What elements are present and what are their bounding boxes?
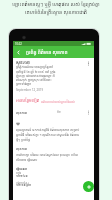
staticText: ១២ម ៤ឆ — [16, 174, 28, 178]
staticText: អានបន្ថែមទៀត — [16, 98, 40, 104]
staticText: សុខភាព — [16, 110, 28, 115]
staticText: សុខភាព — [16, 146, 28, 151]
staticText: សុខភាព — [16, 60, 30, 66]
button[interactable]: More options — [84, 59, 92, 67]
staticText: ឡោះពត៌មានល្អៗ ឬអ្វី ហេតុផល របស់ ខ្មែរគ្រ… — [8, 1, 104, 15]
staticText: ១២:១៨ ព្រឹក — [16, 183, 32, 187]
button[interactable]: Add comment — [83, 181, 94, 192]
button[interactable]: Back — [13, 47, 23, 57]
button[interactable]: អានបន្ថែមទៀត — [16, 98, 75, 104]
staticText: ប្រព័ន្ធ ព័ត៌មាន សុខភាព — [26, 49, 68, 56]
staticText: ឆ្លើយតប — [16, 166, 28, 170]
staticText: មតិយោបល់របស់អ្នកទាំងអស់ — [41, 100, 75, 104]
staticText: ចម្លង — [16, 171, 22, 175]
staticText: សូមស្វាគមន៍ មកកាន់កម្មវិធី ព័ត៌មានសុខភាព… — [16, 127, 82, 142]
button[interactable]: Comment options — [84, 108, 92, 116]
staticText: ព្រឹត្តិការណ៍នេះបានប្រព្រឹត្តទៅនៅថ្ងៃទី … — [16, 64, 57, 86]
staticText: ៥ម — [57, 110, 61, 114]
staticText: ការពិភាក្សា ទាំងនេះ មានតែអ្នកដែល ចុះឈ្មោ… — [16, 152, 80, 162]
staticText: 10:22 — [15, 42, 22, 46]
staticText: September 12, 2019 — [16, 88, 44, 92]
staticText: បន្ថែមទៀត — [16, 181, 28, 185]
